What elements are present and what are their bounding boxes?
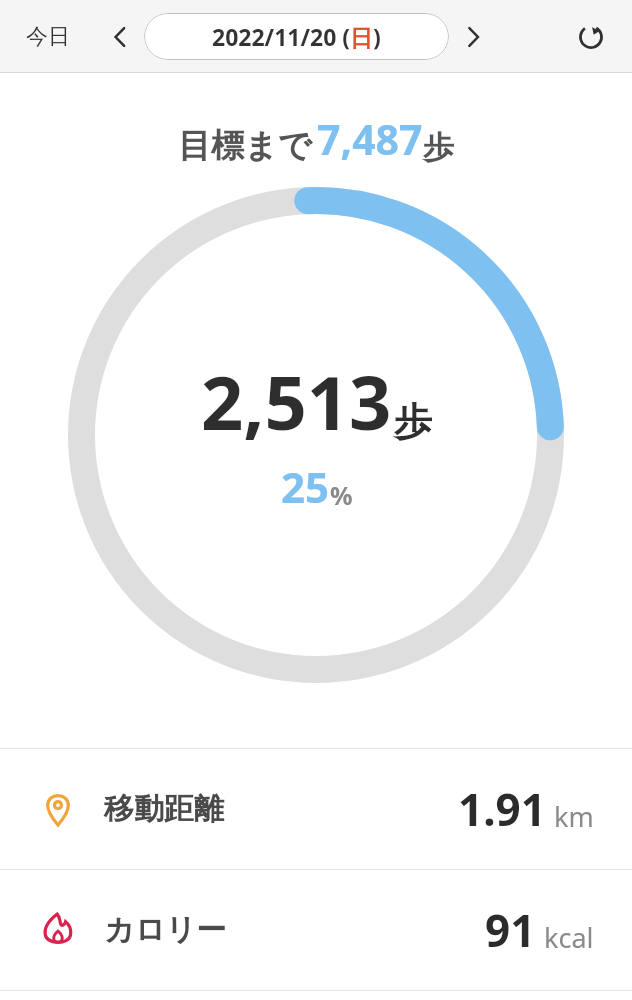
button[interactable]: Refresh [568, 14, 614, 60]
button[interactable]: Next day [453, 17, 493, 57]
staticText: 2022/11/20 (日) [212, 21, 381, 52]
staticText: 歩 [394, 398, 432, 446]
staticText: 25 [281, 458, 330, 515]
staticText: 目標まで [178, 125, 312, 167]
other: Calories [38, 910, 78, 950]
staticText: 91 [485, 900, 536, 960]
button[interactable]: Calories [0, 870, 632, 990]
button[interactable]: Distance [0, 749, 632, 869]
staticText: km [554, 798, 594, 835]
staticText: 7,487 [317, 111, 423, 167]
staticText: 2,513 [201, 351, 392, 452]
staticText: 歩 [423, 128, 454, 167]
staticText: 今日 [26, 23, 70, 51]
staticText: kcal [544, 919, 594, 956]
staticText: % [330, 478, 353, 512]
button[interactable]: 今日 [18, 17, 78, 57]
staticText: カロリー [104, 911, 227, 949]
staticText: 移動距離 [104, 790, 224, 828]
other: Distance [38, 789, 78, 829]
button[interactable]: Previous day [100, 17, 140, 57]
button[interactable]: 2022/11/20 (日) [144, 13, 449, 60]
staticText: 1.91 [458, 779, 546, 839]
